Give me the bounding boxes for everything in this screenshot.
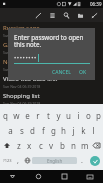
button[interactable]: Recents	[51, 170, 77, 183]
button[interactable]: List	[45, 8, 59, 22]
staticText: OK	[79, 69, 87, 76]
button[interactable]: Edit	[31, 8, 45, 22]
staticText: Notes on plants	[3, 58, 48, 66]
staticText: q	[3, 110, 8, 121]
staticText: g	[51, 125, 56, 136]
button[interactable]: v	[46, 138, 57, 153]
button[interactable]: Back	[0, 170, 25, 183]
staticText: o	[86, 110, 91, 121]
button[interactable]: Enter	[87, 153, 102, 168]
button[interactable]: Notes on plants	[0, 56, 103, 73]
staticText: ?123	[3, 158, 12, 163]
button[interactable]: Video title auto link	[0, 73, 103, 90]
button[interactable]: i	[73, 108, 83, 123]
staticText: l	[92, 125, 95, 136]
staticText: e	[25, 110, 30, 121]
button[interactable]: h	[58, 123, 68, 138]
staticText: Sun Nov 04 06:39 2018	[3, 33, 41, 38]
button[interactable]: g	[48, 123, 58, 138]
button[interactable]: j	[68, 123, 78, 138]
button[interactable]: Russian sage	[0, 22, 103, 39]
staticText: w	[13, 110, 20, 121]
staticText: i	[77, 110, 80, 121]
button[interactable]: p	[93, 108, 103, 123]
staticText: Shopping list	[3, 92, 40, 100]
staticText: English	[47, 158, 63, 164]
button[interactable]: Shopping list	[0, 90, 103, 104]
staticText: s	[20, 125, 24, 136]
button[interactable]: More	[87, 8, 101, 22]
button[interactable]: s	[16, 123, 27, 138]
staticText: .	[81, 156, 83, 166]
button[interactable]: CANCEL	[50, 68, 73, 77]
button[interactable]: .	[77, 153, 87, 168]
button[interactable]: Home	[25, 170, 51, 183]
staticText: n	[71, 140, 76, 151]
button[interactable]: f	[38, 123, 48, 138]
staticText: k	[81, 125, 86, 136]
button[interactable]: OK	[77, 68, 89, 77]
button[interactable]: b	[57, 138, 68, 153]
staticText: v	[49, 140, 54, 151]
staticText: Sun Nov 04 06:39 2018	[3, 101, 41, 104]
button[interactable]: Shift	[0, 138, 13, 153]
button[interactable]: m	[79, 138, 90, 153]
staticText: Sun Nov 04 06:39 2018	[3, 67, 41, 72]
staticText: r	[36, 110, 40, 121]
button[interactable]: Change language	[22, 153, 32, 168]
button[interactable]: ,	[14, 153, 22, 168]
button[interactable]: n	[68, 138, 79, 153]
staticText: z	[17, 140, 21, 151]
button[interactable]: ?123	[1, 153, 14, 168]
staticText: y	[56, 110, 61, 121]
button[interactable]: l	[88, 123, 98, 138]
staticText: c	[39, 140, 43, 151]
staticText: CANCEL	[52, 69, 71, 76]
button[interactable]: Folder	[73, 8, 87, 22]
button[interactable]: Keyboard	[77, 170, 103, 183]
button[interactable]: a	[5, 123, 16, 138]
staticText: m	[81, 140, 89, 151]
staticText: h	[61, 125, 66, 136]
staticText: Sun Nov 04 06:39 2018	[3, 50, 41, 55]
button[interactable]: English	[32, 157, 77, 164]
staticText: j	[72, 125, 75, 136]
staticText: x	[27, 140, 32, 151]
button[interactable]: q	[0, 108, 11, 123]
button[interactable]: x	[24, 138, 35, 153]
button[interactable]: u	[63, 108, 73, 123]
staticText: ,	[17, 156, 19, 166]
staticText: p	[96, 110, 101, 121]
button[interactable]: c	[35, 138, 46, 153]
button[interactable]: o	[83, 108, 93, 123]
staticText: d	[30, 125, 35, 136]
button[interactable]: r	[33, 108, 43, 123]
staticText: b	[60, 140, 65, 151]
staticText: t	[47, 110, 50, 121]
staticText: Sun Nov 04 06:39 2018	[3, 84, 41, 89]
button[interactable]: Gardening list	[0, 39, 103, 56]
button[interactable]: Backspace	[90, 138, 103, 153]
staticText: Russian sage	[3, 24, 40, 32]
button[interactable]: t	[43, 108, 53, 123]
staticText: Gardening list	[3, 41, 43, 49]
button[interactable]: Search	[59, 8, 73, 22]
button[interactable]: k	[78, 123, 88, 138]
staticText: Video title auto link	[3, 75, 58, 83]
button[interactable]: d	[27, 123, 38, 138]
button[interactable]: w	[11, 108, 22, 123]
button[interactable]: z	[13, 138, 24, 153]
staticText: a	[8, 125, 13, 136]
staticText: Enter password to open this note.	[14, 33, 90, 49]
staticText: ••••••••	[14, 54, 37, 62]
staticText: 06:39	[90, 1, 102, 7]
staticText: f	[42, 125, 45, 136]
staticText: u	[66, 110, 71, 121]
button[interactable]: e	[22, 108, 33, 123]
button[interactable]: y	[53, 108, 63, 123]
